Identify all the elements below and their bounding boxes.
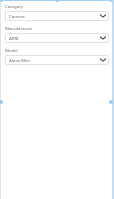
staticText: Camera xyxy=(9,13,99,19)
staticText: Category xyxy=(5,3,24,9)
button[interactable]: Model selector xyxy=(5,55,109,65)
staticText: Model xyxy=(5,47,18,53)
staticText: Manufacturer xyxy=(5,25,33,31)
button[interactable]: Category selector xyxy=(5,11,109,21)
staticText: Alexa Mini xyxy=(9,57,99,63)
staticText: ARRI xyxy=(9,35,99,41)
button[interactable]: Manufacturer selector xyxy=(5,33,109,43)
